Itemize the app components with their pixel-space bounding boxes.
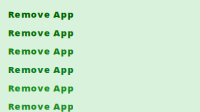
staticText: Remove App [8,26,73,39]
staticText: Remove App [8,100,73,112]
staticText: Remove App [8,82,73,94]
staticText: Remove App [8,63,73,76]
staticText: Remove App [8,45,73,57]
staticText: Remove App [8,8,73,20]
